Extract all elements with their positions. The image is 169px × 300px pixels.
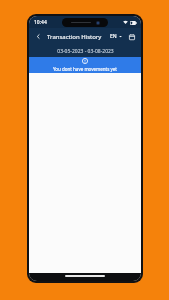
staticText: You dont have movements yet xyxy=(53,66,117,72)
staticText: EN xyxy=(110,33,117,40)
button[interactable]: You dont have movements yet xyxy=(29,57,141,73)
staticText: 10:44 xyxy=(34,19,47,26)
button[interactable]: 03-05-2023 - 03-08-2023 xyxy=(29,45,141,57)
staticText: Transaction History xyxy=(47,33,102,41)
button[interactable]: EN xyxy=(108,31,124,42)
button[interactable]: Back xyxy=(33,31,44,42)
staticText: 03-05-2023 - 03-08-2023 xyxy=(57,48,114,55)
button[interactable]: Select date range xyxy=(126,31,137,42)
